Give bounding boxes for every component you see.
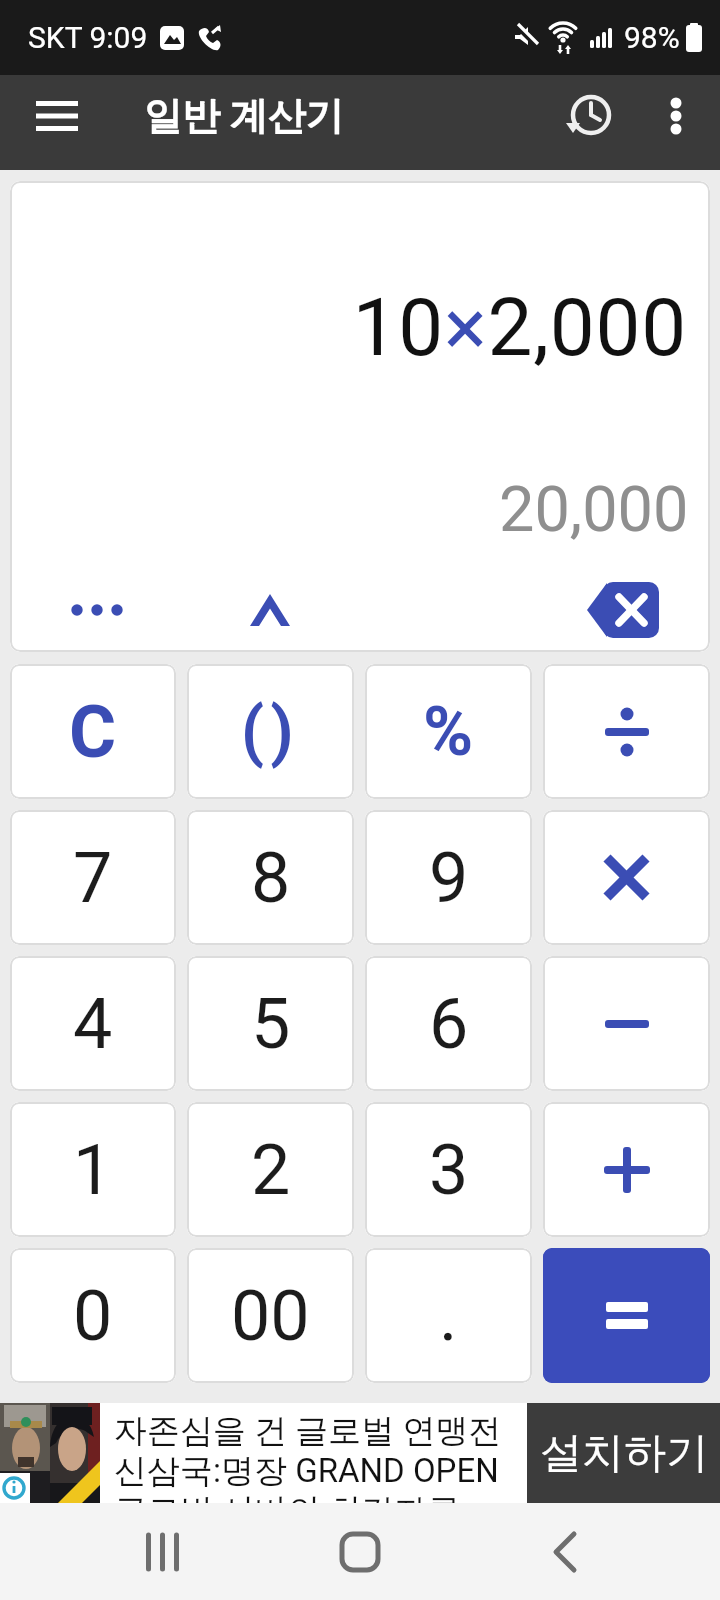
button[interactable]: 8 [187,810,354,945]
staticText: 00 [231,1275,310,1357]
staticText: 2 [251,1129,291,1211]
button[interactable]: 00 [187,1248,354,1383]
staticText: C [69,690,117,774]
staticText: 10×2,000 [352,281,687,375]
button[interactable]: 6 [365,956,532,1091]
button[interactable]: 5 [187,956,354,1091]
button[interactable]: 설치하기 [527,1403,720,1503]
staticText: 3 [429,1129,469,1211]
staticText: 4 [73,983,113,1065]
staticText: 98% [624,20,680,55]
staticText: 6 [429,983,469,1065]
staticText: 일반 계산기 [144,92,344,140]
button[interactable] [0,1403,100,1503]
button[interactable]: 1 [10,1102,176,1237]
staticText: 자존심을 건 글로벌 연맹전 [114,1410,502,1450]
staticText: 설치하기 [540,1427,708,1480]
button[interactable]: () [187,664,354,799]
staticText: 7 [73,837,113,919]
button[interactable] [543,1248,710,1383]
button[interactable]: 7 [10,810,176,945]
staticText: 신삼국:명장 GRAND OPEN [114,1450,499,1490]
button[interactable]: 9 [365,810,532,945]
staticText: 글로벌 서버의 최강자를 [114,1490,461,1503]
button[interactable] [525,1512,605,1592]
staticText: 20,000 [499,473,689,547]
button[interactable] [123,1512,203,1592]
button[interactable]: 0 [10,1248,176,1383]
button[interactable] [543,664,710,799]
button[interactable] [642,82,710,150]
staticText: 5 [251,983,291,1065]
button[interactable] [225,571,315,649]
button[interactable] [320,1512,400,1592]
staticText: SKT 9:09 [28,20,148,55]
button[interactable] [543,956,710,1091]
button[interactable] [576,571,670,649]
button[interactable]: . [365,1248,532,1383]
button[interactable]: 4 [10,956,176,1091]
button[interactable] [47,571,147,649]
staticText: 8 [251,837,291,919]
staticText: () [241,693,300,770]
button[interactable] [556,82,624,150]
staticText: 9 [429,837,469,919]
button[interactable]: % [365,664,532,799]
button[interactable] [543,1102,710,1237]
staticText: . [439,1275,458,1357]
staticText: 1 [73,1129,113,1211]
button[interactable]: 자존심을 건 글로벌 연맹전 [100,1403,527,1503]
staticText: 0 [73,1275,113,1357]
button[interactable]: C [10,664,176,799]
button[interactable]: 3 [365,1102,532,1237]
button[interactable] [543,810,710,945]
button[interactable] [22,81,92,151]
button[interactable]: 2 [187,1102,354,1237]
staticText: % [423,692,474,772]
